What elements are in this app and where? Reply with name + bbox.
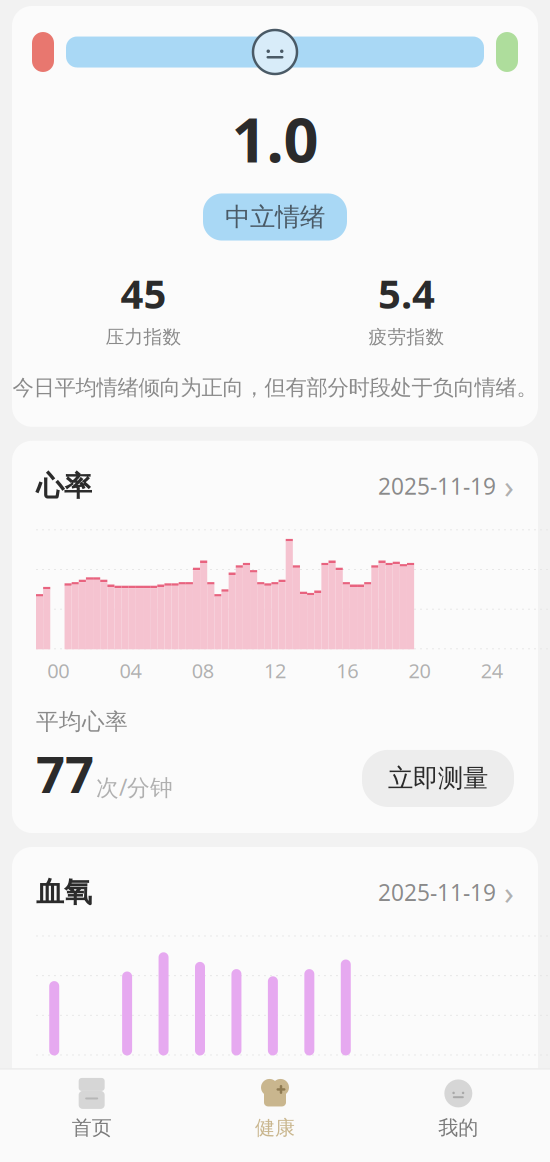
staticText: 12 xyxy=(264,657,286,684)
button[interactable]: 立即测量 xyxy=(362,750,514,807)
staticText: 健康 xyxy=(255,1115,295,1140)
staticText: 中立情绪 xyxy=(225,201,325,232)
staticText: 16 xyxy=(336,657,358,684)
staticText: 压力指数 xyxy=(105,326,181,349)
staticText: › xyxy=(504,871,514,913)
staticText: 我的 xyxy=(438,1115,478,1140)
staticText: 2025-11-19 xyxy=(378,471,496,501)
staticText: 45 xyxy=(120,267,166,320)
staticText: 77 xyxy=(36,740,94,807)
button[interactable]: 2025-11-19 xyxy=(378,871,514,913)
staticText: 立即测量 xyxy=(388,763,488,794)
staticText: 心率 xyxy=(36,469,92,503)
button[interactable]: 2025-11-19 xyxy=(378,465,514,507)
staticText: 04 xyxy=(119,657,141,684)
staticText: 平均心率 xyxy=(36,708,128,736)
button[interactable]: 首页 xyxy=(0,1069,183,1150)
staticText: 今日平均情绪倾向为正向，但有部分时段处于负向情绪。 xyxy=(12,375,537,401)
staticText: 血氧 xyxy=(36,875,92,909)
staticText: 24 xyxy=(481,657,503,684)
staticText: 2025-11-19 xyxy=(378,877,496,907)
button[interactable]: 健康 xyxy=(183,1069,367,1150)
staticText: 疲劳指数 xyxy=(368,326,444,349)
staticText: 00 xyxy=(47,657,69,684)
staticText: 次/分钟 xyxy=(96,772,173,802)
button[interactable]: 我的 xyxy=(367,1069,550,1150)
staticText: 12 xyxy=(264,1063,286,1090)
staticText: 首页 xyxy=(72,1115,112,1140)
staticText: 1.0 xyxy=(231,98,318,179)
staticText: 08 xyxy=(192,657,214,684)
button[interactable]: 中立情绪 xyxy=(203,193,347,240)
staticText: › xyxy=(504,465,514,507)
staticText: 20 xyxy=(409,657,431,684)
staticText: 5.4 xyxy=(378,267,435,320)
